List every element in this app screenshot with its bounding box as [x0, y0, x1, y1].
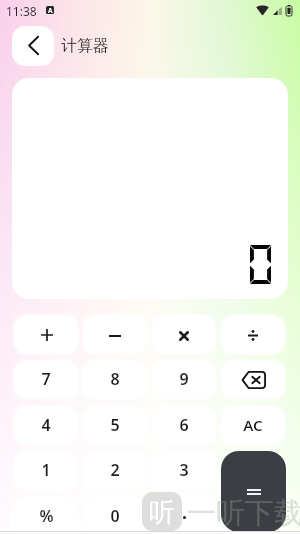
staticText: 6 [179, 414, 189, 436]
button[interactable]: Multiply [152, 315, 216, 354]
staticText: A [48, 6, 53, 14]
staticText: 11:38 [6, 3, 37, 19]
button[interactable]: 7 [14, 360, 78, 399]
staticText: 计算器 [61, 36, 109, 56]
staticText: 听 [149, 496, 175, 529]
staticText: 2 [110, 459, 120, 481]
button[interactable]: Back [12, 26, 54, 66]
staticText: 8 [110, 368, 120, 390]
staticText: 4 [41, 414, 51, 436]
staticText: 一听下载 [187, 495, 300, 532]
staticText: 0 [110, 505, 120, 527]
button[interactable]: 9 [152, 360, 216, 399]
button[interactable]: AC [221, 406, 285, 445]
button[interactable]: 0 [83, 497, 147, 534]
staticText: 1 [41, 459, 51, 481]
staticText: 7 [41, 368, 51, 390]
button[interactable]: 2 [83, 451, 147, 490]
button[interactable]: 8 [83, 360, 147, 399]
staticText: 3 [179, 459, 189, 481]
button[interactable]: Minus [83, 315, 147, 354]
button[interactable]: 4 [14, 406, 78, 445]
button[interactable]: Plus [14, 315, 78, 354]
staticText: 5 [110, 414, 120, 436]
button[interactable]: Divide [221, 315, 285, 354]
button[interactable]: 1 [14, 451, 78, 490]
button[interactable]: Backspace [221, 360, 285, 399]
button[interactable]: 5 [83, 406, 147, 445]
button[interactable]: 3 [152, 451, 216, 490]
button[interactable] [152, 497, 216, 534]
staticText: % [39, 505, 54, 527]
staticText: 9 [179, 368, 189, 390]
staticText: AC [243, 415, 263, 435]
button[interactable]: % [14, 497, 78, 534]
button[interactable]: 6 [152, 406, 216, 445]
button[interactable]: Equals [221, 451, 286, 532]
